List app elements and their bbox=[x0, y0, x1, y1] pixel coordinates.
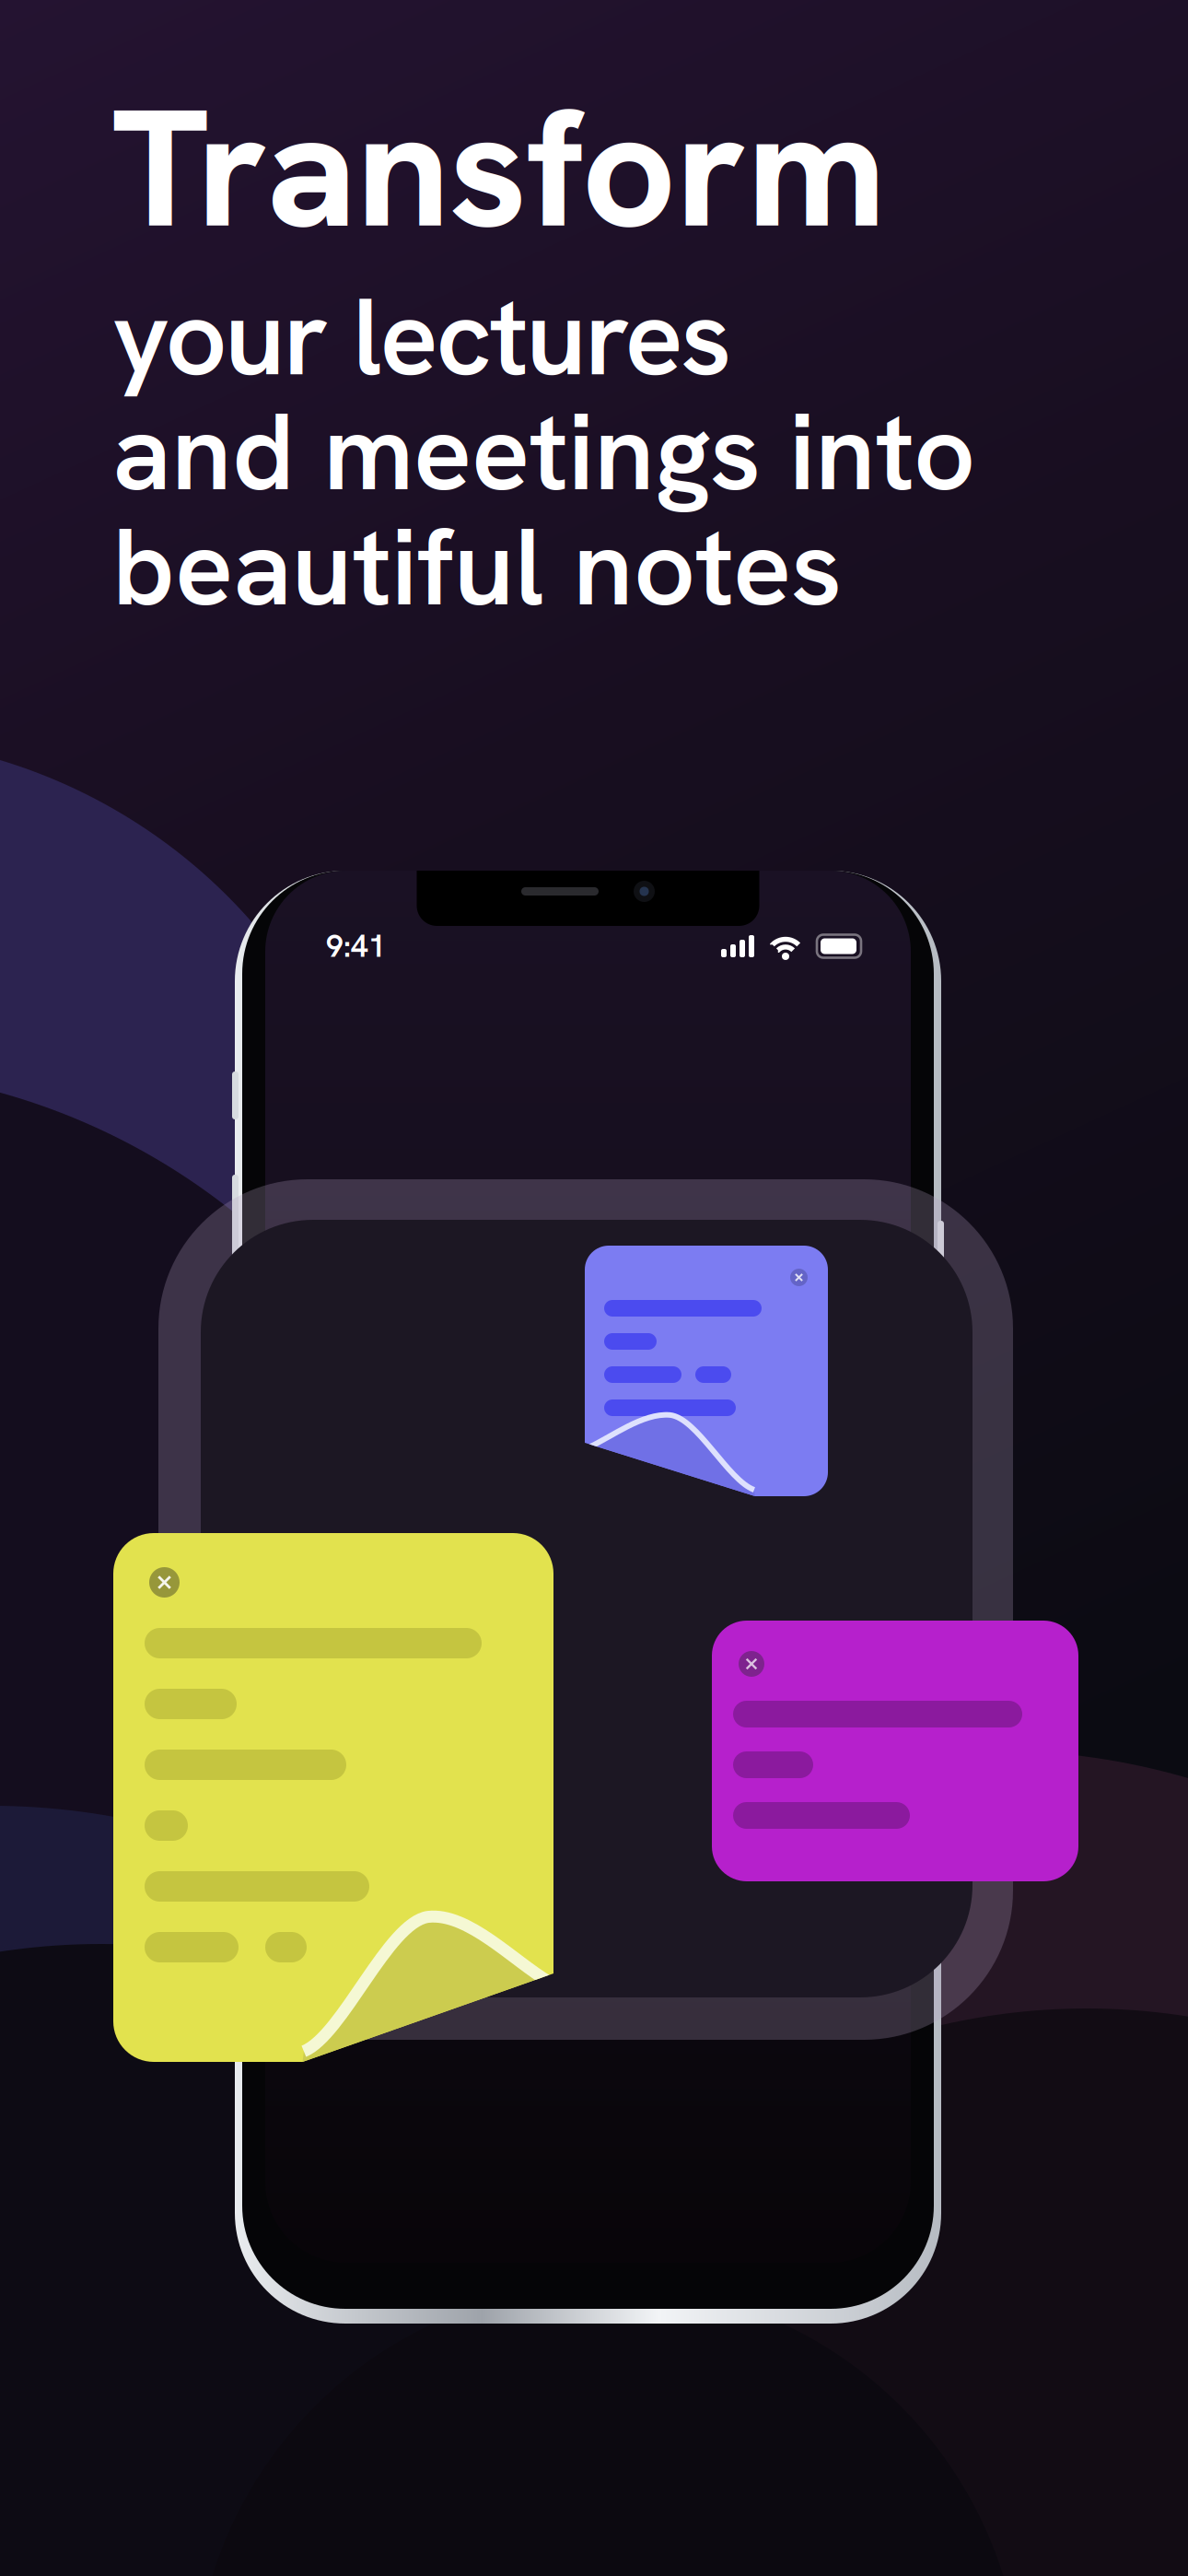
staticText: beautiful notes bbox=[112, 496, 842, 637]
staticText: and meetings into bbox=[112, 381, 975, 522]
staticText: 9:41 bbox=[326, 926, 386, 966]
button[interactable]: Purple note bbox=[712, 1621, 1078, 1881]
staticText: your lectures bbox=[112, 266, 731, 407]
button[interactable]: Blue note bbox=[585, 1246, 828, 1496]
staticText: Transform bbox=[112, 61, 886, 275]
button[interactable]: Yellow note bbox=[113, 1533, 553, 2062]
